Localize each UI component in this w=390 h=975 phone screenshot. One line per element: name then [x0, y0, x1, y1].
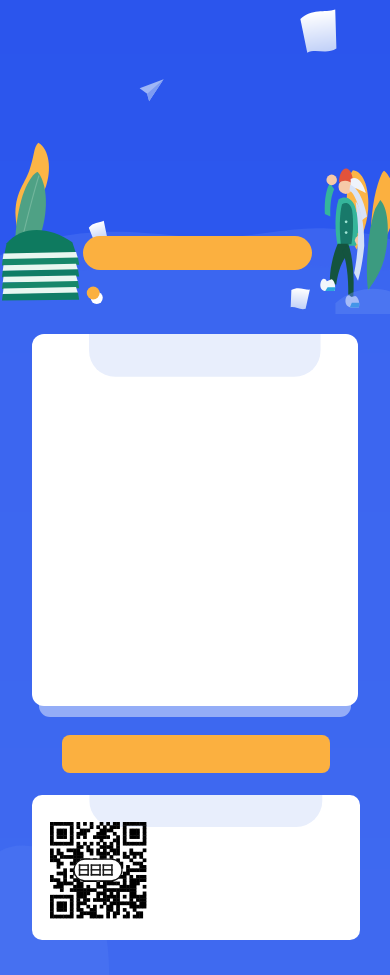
button[interactable]: Search	[83, 236, 312, 270]
button[interactable]	[32, 334, 358, 706]
button[interactable]: QR code	[50, 822, 146, 918]
button[interactable]: Confirm	[62, 735, 330, 773]
